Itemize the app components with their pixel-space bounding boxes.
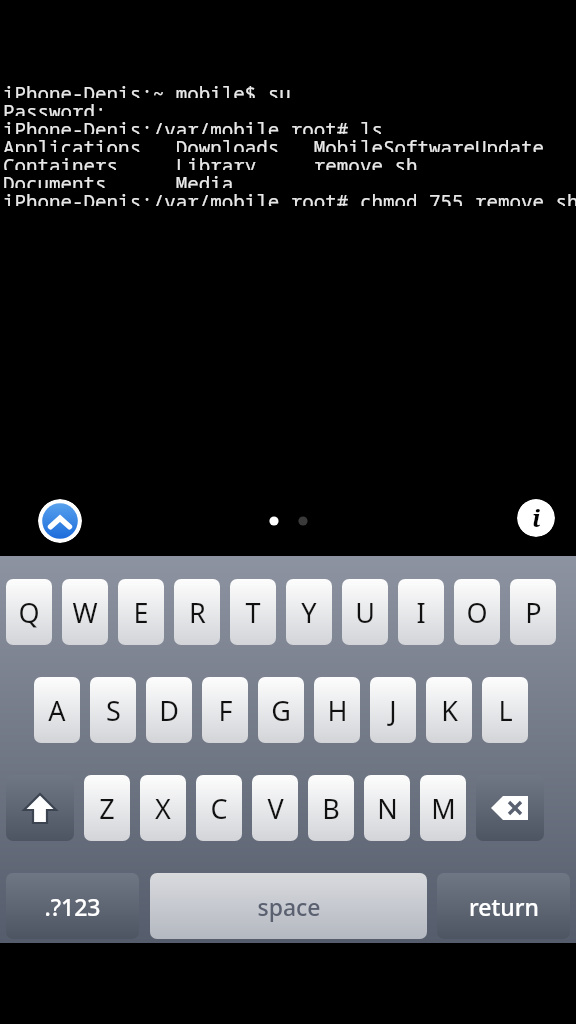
staticText: U	[355, 594, 375, 631]
staticText: iPhone-Denis:/var/mobile root# ls	[3, 116, 383, 134]
button[interactable]: B	[308, 775, 354, 841]
staticText: R	[189, 594, 206, 631]
staticText: T	[245, 594, 261, 631]
button[interactable]: Scroll up	[38, 499, 82, 543]
button[interactable]: Info	[517, 499, 555, 537]
staticText: P	[525, 594, 542, 631]
staticText: Z	[99, 790, 115, 827]
button[interactable]: G	[258, 677, 304, 743]
staticText: D	[159, 692, 179, 729]
button[interactable]: Backspace	[6, 775, 74, 841]
button[interactable]: space	[150, 873, 427, 939]
staticText: Password:	[3, 98, 107, 116]
button[interactable]: W	[62, 579, 108, 645]
staticText: B	[322, 790, 340, 827]
staticText: J	[389, 692, 397, 729]
button[interactable]: V	[252, 775, 298, 841]
button[interactable]: T	[230, 579, 276, 645]
button[interactable]: C	[196, 775, 242, 841]
button[interactable]: E	[118, 579, 164, 645]
staticText: A	[48, 692, 66, 729]
staticText: O	[466, 594, 488, 631]
button[interactable]: Backspace	[476, 775, 544, 841]
button[interactable]: F	[202, 677, 248, 743]
button[interactable]: P	[510, 579, 556, 645]
staticText: X	[155, 790, 171, 827]
staticText: S	[106, 692, 121, 729]
button[interactable]: .?123	[6, 873, 139, 939]
button[interactable]: K	[426, 677, 472, 743]
staticText: L	[498, 692, 513, 729]
staticText: W	[72, 594, 98, 631]
staticText: K	[441, 692, 458, 729]
staticText: Y	[301, 594, 317, 631]
button[interactable]: M	[420, 775, 466, 841]
staticText: I	[416, 594, 426, 631]
button[interactable]: O	[454, 579, 500, 645]
button[interactable]: D	[146, 677, 192, 743]
staticText: G	[271, 692, 291, 729]
staticText: H	[327, 692, 348, 729]
staticText: N	[377, 790, 398, 827]
staticText: Applications Downloads MobileSoftwareUpd…	[3, 134, 545, 152]
button[interactable]: H	[314, 677, 360, 743]
button[interactable]: return	[437, 873, 570, 939]
staticText: Q	[18, 594, 40, 631]
button[interactable]: U	[342, 579, 388, 645]
staticText: i	[532, 501, 541, 534]
button[interactable]: S	[90, 677, 136, 743]
staticText: iPhone-Denis:~ mobile$ su	[3, 80, 291, 98]
staticText: space	[257, 891, 321, 922]
staticText: Containers Library remove.sh	[3, 152, 418, 170]
staticText: M	[431, 790, 456, 827]
button[interactable]: X	[140, 775, 186, 841]
staticText: C	[210, 790, 228, 827]
button[interactable]: J	[370, 677, 416, 743]
button[interactable]: R	[174, 579, 220, 645]
button[interactable]: Z	[84, 775, 130, 841]
staticText: iPhone-Denis:/var/mobile root# chmod 755…	[3, 188, 576, 206]
button[interactable]: L	[482, 677, 528, 743]
staticText: F	[218, 692, 233, 729]
button[interactable]: N	[364, 775, 410, 841]
staticText: E	[133, 594, 149, 631]
button[interactable]: A	[34, 677, 80, 743]
staticText: .?123	[44, 891, 101, 922]
staticText: Documents Media	[3, 170, 234, 188]
staticText: V	[267, 790, 284, 827]
button[interactable]: Q	[6, 579, 52, 645]
button[interactable]: Y	[286, 579, 332, 645]
button[interactable]: I	[398, 579, 444, 645]
staticText: return	[469, 891, 539, 922]
